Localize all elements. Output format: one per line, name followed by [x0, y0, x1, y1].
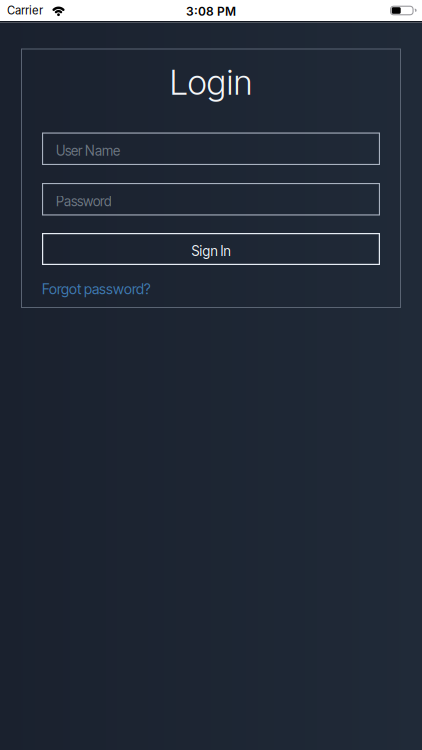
staticText: User Name	[56, 143, 120, 159]
button[interactable]: Password	[42, 183, 380, 215]
staticText: Password	[56, 193, 112, 209]
button[interactable]: Forgot password?	[42, 280, 151, 298]
staticText: 3:08 PM	[186, 4, 236, 18]
staticText: Carrier	[7, 4, 43, 17]
button[interactable]: Sign In	[42, 233, 380, 265]
button[interactable]: User Name	[42, 132, 380, 165]
staticText: Forgot password?	[42, 280, 151, 298]
staticText: Sign In	[191, 243, 230, 259]
staticText: Login	[169, 61, 252, 103]
